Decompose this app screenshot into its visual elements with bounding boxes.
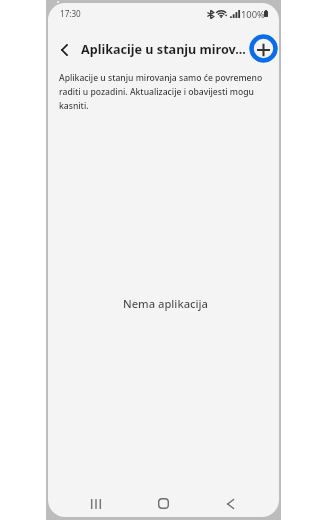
button[interactable]: Početna [143, 489, 183, 517]
button[interactable]: Natrag [210, 489, 250, 517]
staticText: Nema aplikacija [123, 296, 208, 311]
button[interactable]: Nedavne aplikacije [76, 489, 116, 517]
staticText: 100% [241, 8, 265, 21]
button[interactable]: Natrag [54, 40, 74, 60]
staticText: Aplikacije u stanju mirovanja samo će po… [59, 72, 274, 111]
staticText: 17:30 [60, 8, 81, 19]
staticText: Aplikacije u stanju mirov... [81, 41, 246, 58]
button[interactable]: Dodaj [249, 34, 278, 63]
